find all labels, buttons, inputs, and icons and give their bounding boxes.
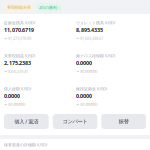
button[interactable]: 実現損益分析 (4, 3, 34, 11)
staticText: ≈ ¥250,239.41 (4, 68, 28, 74)
staticText: 0.0000 (4, 92, 20, 100)
staticText: ≈ ¥1,023,330.67 (76, 35, 103, 41)
staticText: 振替 (119, 118, 129, 125)
staticText: 11,070.6719 (4, 26, 34, 34)
staticText: ≈ ¥0.000000 (76, 68, 97, 74)
staticText: 両クロス担保額 (USD) (76, 53, 115, 58)
button[interactable]: 振替 (101, 114, 146, 129)
button[interactable]: 2日の勝利 › (36, 3, 62, 11)
staticText: ≈ ¥0.000000 (4, 101, 25, 107)
staticText: 借入総額 (USD) (4, 86, 31, 91)
staticText: ≈ ¥1,273,570.09 (4, 35, 31, 41)
staticText: 維持証拠金 (USD) (76, 86, 107, 91)
button[interactable]: 借入 / 返済 (4, 114, 49, 129)
staticText: 実現損益分析 (7, 5, 31, 10)
staticText: 8,895.4335 (76, 26, 103, 34)
staticText: ウォレット残高 (USD) (76, 20, 115, 25)
staticText: ≈ ¥0.000000 (76, 101, 97, 107)
staticText: 2日の勝利 › (39, 5, 59, 10)
staticText: 未実現損益 (USD) (4, 53, 35, 58)
staticText: 2,175.2383 (4, 59, 31, 67)
staticText: 0.0000 (76, 92, 92, 100)
staticText: 証拠金残高 (USD) (4, 20, 35, 25)
staticText: コンバート (62, 118, 87, 125)
staticText: 保有資産の評価額 (USD) (4, 142, 47, 147)
staticText: 0.0000 (76, 59, 92, 67)
button[interactable]: コンバート (53, 114, 97, 129)
staticText: 借入 / 返済 (14, 118, 38, 125)
